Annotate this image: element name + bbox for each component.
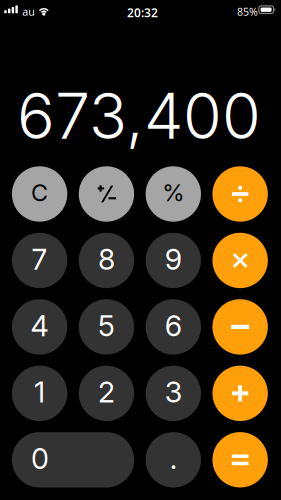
button[interactable]: Plus minus <box>79 166 134 222</box>
button[interactable]: 8 <box>79 233 134 288</box>
button[interactable]: 5 <box>79 299 134 355</box>
button[interactable]: Minus <box>212 299 268 355</box>
button[interactable]: 0 <box>12 432 134 487</box>
staticText: 20:32 <box>127 5 158 20</box>
button[interactable]: . <box>146 432 201 487</box>
staticText: 6 <box>165 308 182 343</box>
button[interactable]: 3 <box>146 366 201 421</box>
button[interactable]: Equals <box>212 432 268 487</box>
staticText: 8 <box>98 242 115 277</box>
staticText: 9 <box>165 242 182 277</box>
button[interactable]: Divide <box>212 166 268 222</box>
staticText: % <box>162 179 184 207</box>
staticText: au <box>22 5 35 19</box>
staticText: 7 <box>32 242 48 277</box>
button[interactable]: Plus <box>212 366 268 421</box>
button[interactable]: 1 <box>12 366 67 421</box>
staticText: 2 <box>98 375 115 409</box>
staticText: C <box>31 179 48 207</box>
staticText: 0 <box>31 441 49 476</box>
button[interactable]: 6 <box>146 299 201 355</box>
staticText: 673,400 <box>17 78 261 154</box>
button[interactable]: 9 <box>146 233 201 288</box>
staticText: 85% <box>237 5 258 19</box>
staticText: 5 <box>98 308 115 343</box>
staticText: . <box>170 441 177 476</box>
button[interactable]: 2 <box>79 366 134 421</box>
button[interactable]: Multiply <box>212 233 268 288</box>
staticText: 4 <box>31 308 49 343</box>
staticText: 1 <box>34 375 45 409</box>
button[interactable]: % <box>146 166 201 222</box>
button[interactable]: 7 <box>12 233 67 288</box>
button[interactable]: 4 <box>12 299 67 355</box>
staticText: 3 <box>165 375 182 409</box>
button[interactable]: C <box>12 166 67 222</box>
